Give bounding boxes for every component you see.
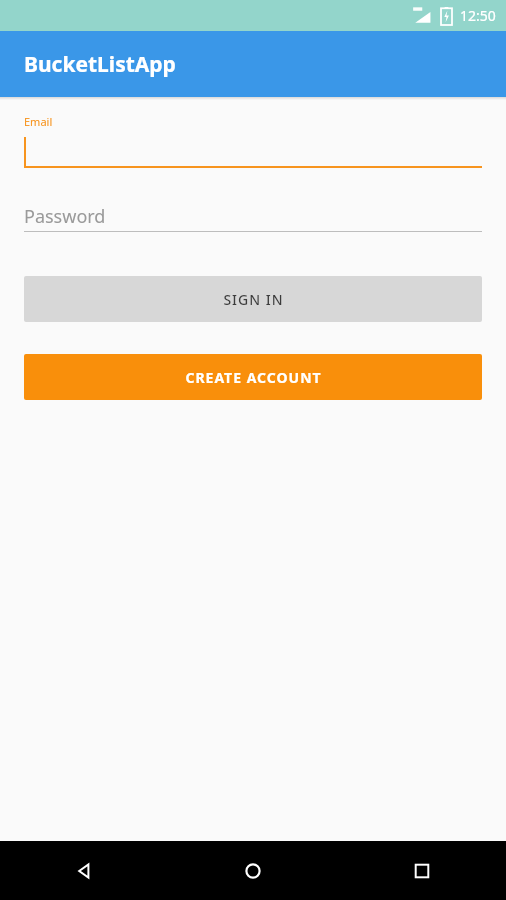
button[interactable]: Email [24, 114, 482, 168]
staticText: CREATE ACCOUNT [185, 368, 322, 387]
staticText: SIGN IN [223, 290, 284, 309]
staticText: Password [24, 204, 106, 229]
staticText: BucketListApp [24, 50, 176, 79]
button[interactable]: Password [24, 201, 482, 232]
staticText: Email [24, 114, 53, 129]
button[interactable]: Back [0, 841, 168, 900]
button[interactable]: SIGN IN [24, 276, 482, 322]
staticText: 12:50 [460, 6, 496, 25]
button[interactable]: Recent apps [337, 841, 506, 900]
button[interactable]: CREATE ACCOUNT [24, 354, 482, 400]
button[interactable]: Home [168, 841, 337, 900]
